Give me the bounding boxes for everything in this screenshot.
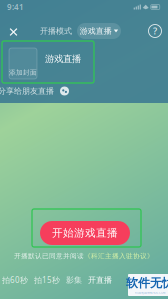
staticText: 添加封面 — [9, 68, 37, 76]
button[interactable]: 拍60秒 — [2, 272, 28, 288]
button[interactable]: 开始游戏直播 — [40, 221, 130, 245]
staticText: 游戏直播 — [45, 53, 81, 65]
staticText: 拍15秒 — [34, 275, 60, 285]
staticText: 开播默认已同意并阅读 — [14, 252, 84, 260]
staticText: 《科汇主播入驻协议》 — [84, 252, 154, 260]
button[interactable]: 添加封面 — [9, 48, 37, 79]
staticText: 拍60秒 — [2, 275, 28, 285]
staticText: 分享给朋友直播 — [0, 86, 54, 96]
button[interactable]: 开直播 — [88, 272, 112, 288]
staticText: RUANJIANWUYOU.COM — [135, 291, 165, 294]
staticText: 9:41 — [7, 2, 24, 12]
staticText: 软件无忧 — [126, 276, 168, 290]
staticText: 开始游戏直播 — [52, 226, 118, 239]
button[interactable]: Help — [144, 20, 166, 42]
button[interactable]: 拍15秒 — [34, 272, 60, 288]
button[interactable]: Share to WeChat — [59, 85, 70, 96]
button[interactable]: 《科汇主播入驻协议》 — [84, 252, 154, 260]
button[interactable]: 影集 — [66, 272, 82, 288]
button[interactable]: 游戏直播 — [77, 23, 121, 39]
staticText: 游戏直播 — [80, 26, 112, 36]
button[interactable]: 开播模式 — [38, 23, 74, 39]
staticText: 影集 — [66, 275, 82, 285]
button[interactable]: Close — [1, 21, 25, 43]
staticText: 开直播 — [88, 275, 112, 285]
staticText: 开播模式 — [40, 26, 72, 36]
button[interactable]: 游戏直播 — [44, 52, 82, 66]
staticText: ? — [153, 25, 157, 37]
